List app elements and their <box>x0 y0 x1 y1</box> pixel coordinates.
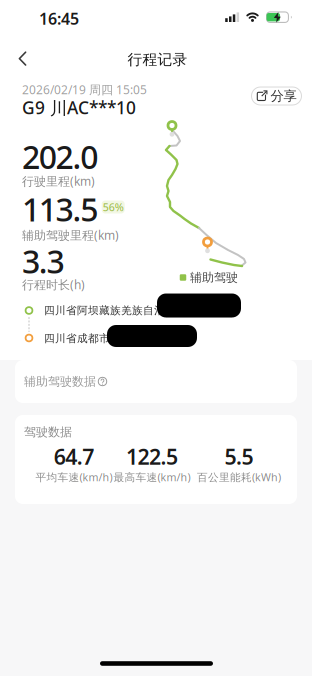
staticText: 202.0 <box>22 135 98 178</box>
staticText: 行程时长(h) <box>22 276 85 292</box>
staticText: 辅助驾驶数据 <box>24 374 96 389</box>
staticText: 驾驶数据 <box>24 425 72 439</box>
staticText: 最高车速(km/h) <box>113 470 190 484</box>
staticText: 行程记录 <box>127 50 187 68</box>
button[interactable]: 帮助 <box>96 375 108 387</box>
staticText: 百公里能耗(kWh) <box>197 470 281 484</box>
staticText: 16:45 <box>39 8 79 29</box>
staticText: 5.5 <box>224 442 253 471</box>
staticText: 辅助驾驶 <box>190 270 238 285</box>
button[interactable]: 分享 <box>251 86 302 105</box>
staticText: 分享 <box>270 88 296 104</box>
staticText: 56% <box>103 200 124 214</box>
staticText: 行驶里程(km) <box>22 173 95 189</box>
staticText: 2026/02/19 周四 15:05 <box>22 81 147 97</box>
staticText: 113.5 <box>22 188 98 230</box>
staticText: 四川省阿坝藏族羌族自治州 <box>44 304 176 317</box>
staticText: 64.7 <box>54 442 94 471</box>
staticText: 平均车速(km/h) <box>35 470 112 484</box>
staticText: 四川省成都市 <box>44 332 110 345</box>
staticText: 122.5 <box>126 442 178 471</box>
staticText: G9 川AC***10 <box>22 96 136 119</box>
staticText: 3.3 <box>22 240 65 282</box>
button[interactable]: Back <box>4 40 40 76</box>
staticText: 辅助驾驶里程(km) <box>22 227 119 243</box>
